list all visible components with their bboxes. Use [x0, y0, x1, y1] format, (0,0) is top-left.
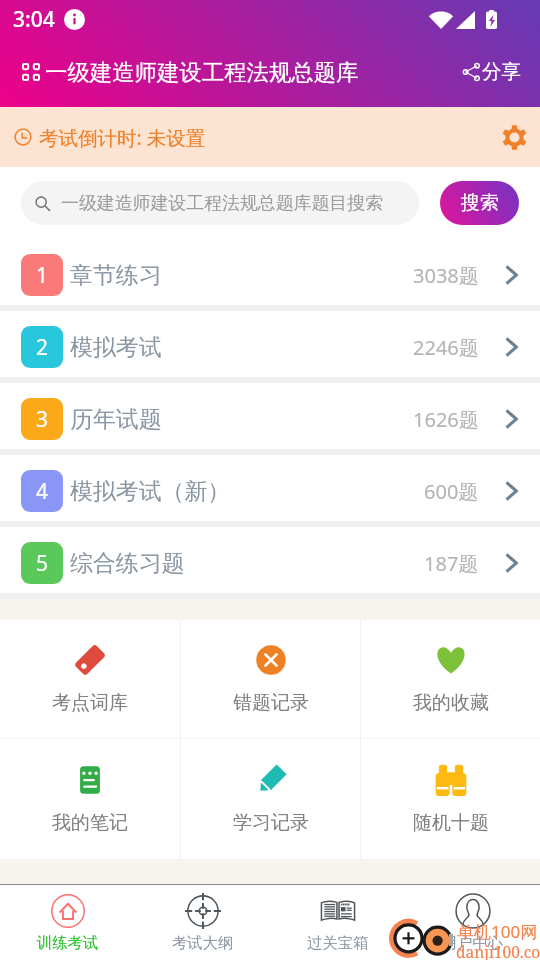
button[interactable]: 用户中心: [405, 885, 540, 960]
staticText: 600题: [424, 478, 479, 505]
staticText: 考试倒计时: 未设置: [39, 124, 206, 151]
staticText: 单机100网: [457, 920, 538, 943]
button[interactable]: 我的收藏: [361, 620, 540, 738]
button[interactable]: 考点词库: [0, 620, 180, 738]
staticText: 1: [36, 261, 49, 290]
button[interactable]: 随机十题: [361, 739, 540, 859]
staticText: 1626题: [413, 406, 479, 433]
staticText: 随机十题: [413, 811, 489, 835]
staticText: 学习记录: [233, 811, 309, 835]
staticText: 5: [36, 549, 49, 578]
staticText: 历年试题: [70, 405, 162, 434]
button[interactable]: 搜索: [440, 181, 519, 225]
staticText: 分享: [482, 59, 521, 84]
button[interactable]: 4: [0, 455, 540, 521]
button[interactable]: 1: [0, 239, 540, 305]
staticText: danji100.com: [456, 941, 540, 960]
button[interactable]: 2: [0, 311, 540, 377]
staticText: 综合练习题: [70, 549, 185, 578]
staticText: 3:04: [13, 5, 55, 34]
staticText: 考试大纲: [172, 933, 234, 952]
staticText: 训练考试: [37, 933, 99, 952]
staticText: 错题记录: [233, 691, 309, 715]
button[interactable]: 设置: [486, 117, 526, 157]
button[interactable]: 一级建造师建设工程法规总题库题目搜索: [21, 181, 419, 225]
button[interactable]: 错题记录: [181, 620, 360, 738]
staticText: 章节练习: [70, 261, 162, 290]
staticText: 一级建造师建设工程法规总题库: [45, 58, 359, 86]
staticText: 用户中心: [442, 933, 504, 952]
staticText: 3038题: [413, 262, 479, 289]
button[interactable]: 3: [0, 383, 540, 449]
staticText: 过关宝箱: [307, 933, 369, 952]
staticText: 搜索: [461, 191, 499, 215]
staticText: 模拟考试: [70, 333, 162, 362]
staticText: 考点词库: [52, 691, 128, 715]
button[interactable]: 考试大纲: [135, 885, 270, 960]
button[interactable]: 我的笔记: [0, 739, 180, 859]
staticText: 模拟考试（新）: [70, 477, 231, 506]
button[interactable]: 训练考试: [0, 885, 135, 960]
staticText: 2246题: [413, 334, 479, 361]
button[interactable]: 过关宝箱: [270, 885, 405, 960]
button[interactable]: 分享: [449, 53, 521, 90]
staticText: 我的收藏: [413, 691, 489, 715]
staticText: 一级建造师建设工程法规总题库题目搜索: [61, 192, 384, 215]
button[interactable]: 5: [0, 527, 540, 593]
staticText: 3: [36, 405, 49, 434]
button[interactable]: 学习记录: [181, 739, 360, 859]
staticText: 我的笔记: [52, 811, 128, 835]
staticText: 2: [36, 333, 49, 362]
staticText: 4: [36, 477, 49, 506]
staticText: 187题: [424, 550, 479, 577]
